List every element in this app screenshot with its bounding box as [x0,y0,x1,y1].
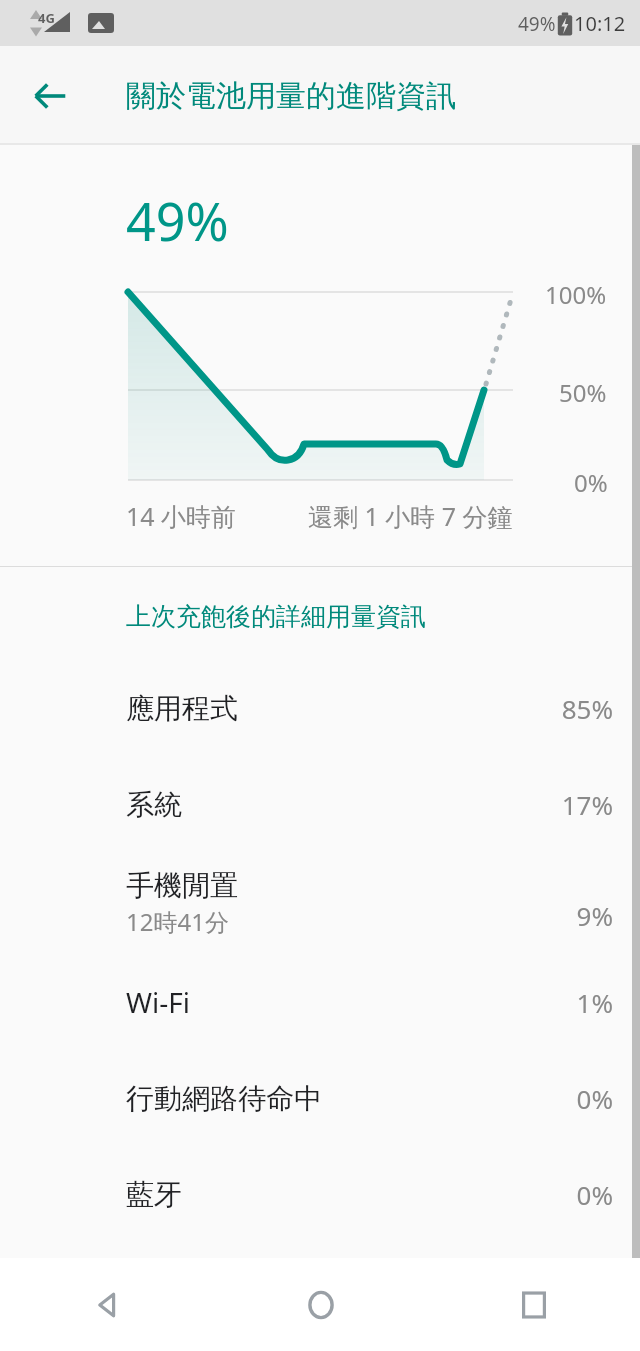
staticText: 0% [576,1177,613,1212]
button[interactable]: Wi-Fi [0,954,640,1050]
staticText: 50% [559,376,607,409]
button[interactable]: Back [14,60,86,132]
button[interactable]: Recent apps [427,1258,640,1351]
button[interactable]: 應用程式 [0,660,640,756]
staticText: 行動網路待命中 [126,1081,322,1116]
staticText: 12時41分 [126,905,229,938]
staticText: 系統 [126,787,182,822]
staticText: 9% [576,898,613,933]
staticText: 手機閒置 [126,868,238,903]
staticText: 17% [561,787,613,822]
staticText: 100% [545,278,607,311]
staticText: 10:12 [574,10,626,37]
staticText: 0% [576,1081,613,1116]
staticText: 49% [518,11,556,37]
staticText: 14 小時前 [126,499,237,533]
staticText: 藍牙 [126,1177,182,1212]
staticText: 上次充飽後的詳細用量資訊 [126,601,426,632]
button[interactable]: 藍牙 [0,1146,640,1242]
staticText: Wi-Fi [126,983,191,1021]
staticText: 49% [126,185,229,256]
button[interactable]: Back [0,1258,214,1351]
staticText: 應用程式 [126,691,238,726]
staticText: 0% [574,466,608,499]
staticText: 還剩 1 小時 7 分鐘 [308,499,513,533]
staticText: 關於電池用量的進階資訊 [126,77,456,115]
button[interactable]: 手機閒置 [0,852,640,954]
staticText: 4G [38,9,55,27]
staticText: 85% [561,691,613,726]
button[interactable]: Home [214,1258,427,1351]
button[interactable]: 行動網路待命中 [0,1050,640,1146]
staticText: 1% [576,985,613,1020]
button[interactable]: 系統 [0,756,640,852]
